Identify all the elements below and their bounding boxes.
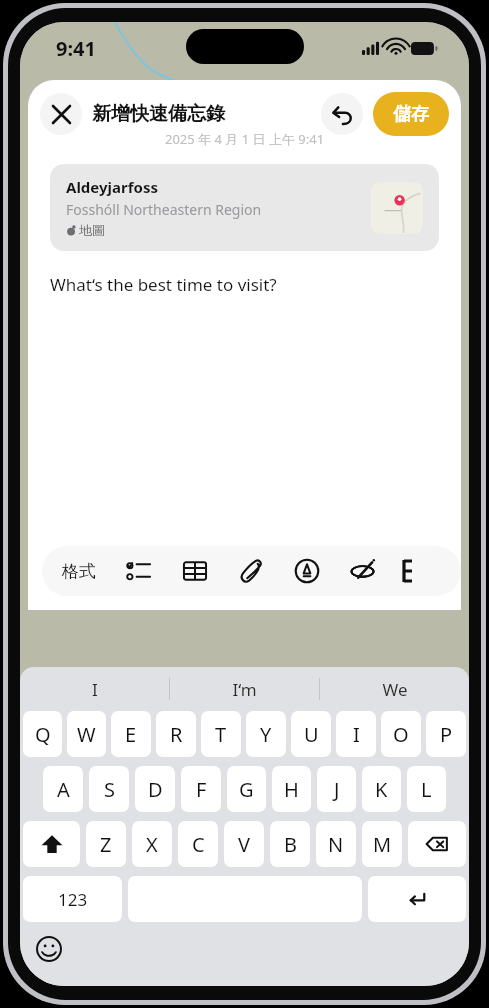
staticText: U bbox=[304, 721, 319, 748]
button[interactable]: 格式 bbox=[60, 561, 98, 582]
button[interactable]: Q bbox=[23, 711, 62, 757]
staticText: W bbox=[77, 721, 96, 748]
button[interactable]: P bbox=[426, 711, 466, 757]
button[interactable]: Z bbox=[86, 821, 126, 867]
button[interactable]: Bold bbox=[402, 560, 412, 582]
staticText: Aldeyjarfoss bbox=[66, 177, 158, 197]
button[interactable]: Aldeyjarfoss bbox=[50, 164, 439, 251]
staticText: F bbox=[196, 776, 207, 803]
staticText: G bbox=[239, 776, 254, 803]
button[interactable]: I bbox=[20, 667, 169, 711]
button[interactable]: N bbox=[316, 821, 356, 867]
staticText: H bbox=[284, 776, 299, 803]
staticText: A bbox=[57, 776, 70, 803]
staticText: 地圖 bbox=[79, 222, 105, 238]
staticText: P bbox=[440, 721, 453, 748]
button[interactable]: I bbox=[336, 711, 376, 757]
button[interactable]: V bbox=[224, 821, 264, 867]
staticText: X bbox=[146, 831, 158, 858]
button[interactable]: M bbox=[362, 821, 402, 867]
staticText: 123 bbox=[58, 888, 88, 911]
staticText: R bbox=[170, 721, 183, 748]
button[interactable]: Checklist bbox=[124, 556, 154, 586]
staticText: I‘m bbox=[232, 678, 257, 701]
staticText: Q bbox=[35, 721, 51, 748]
staticText: M bbox=[373, 831, 392, 858]
staticText: C bbox=[192, 831, 205, 858]
button[interactable]: Shift bbox=[23, 821, 80, 867]
button[interactable]: J bbox=[317, 766, 356, 812]
staticText: 格式 bbox=[62, 561, 96, 582]
button[interactable]: Backspace bbox=[408, 821, 466, 867]
button[interactable]: I‘m bbox=[170, 667, 319, 711]
button[interactable]: Intelligence bbox=[348, 556, 378, 586]
button[interactable]: Attach bbox=[236, 556, 266, 586]
staticText: L bbox=[421, 776, 432, 803]
staticText: J bbox=[334, 776, 340, 803]
staticText: I bbox=[92, 678, 98, 701]
button[interactable]: Emoji bbox=[32, 932, 66, 966]
staticText: V bbox=[238, 831, 250, 858]
button[interactable]: D bbox=[135, 766, 175, 812]
button[interactable]: E bbox=[111, 711, 151, 757]
button[interactable]: O bbox=[381, 711, 421, 757]
staticText: 新增快速備忘錄 bbox=[92, 102, 225, 126]
button[interactable]: S bbox=[89, 766, 129, 812]
button[interactable]: R bbox=[156, 711, 196, 757]
staticText: We bbox=[382, 678, 408, 701]
button[interactable]: Close bbox=[40, 93, 82, 135]
staticText: D bbox=[148, 776, 163, 803]
staticText: Z bbox=[100, 831, 112, 858]
button[interactable]: Y bbox=[246, 711, 286, 757]
button[interactable]: C bbox=[178, 821, 218, 867]
button[interactable]: We bbox=[320, 667, 469, 711]
staticText: What‘s the best time to visit? bbox=[50, 273, 277, 296]
staticText: N bbox=[328, 831, 344, 858]
button[interactable]: 123 bbox=[23, 876, 122, 922]
button[interactable]: Undo bbox=[321, 93, 363, 135]
button[interactable]: H bbox=[272, 766, 311, 812]
staticText: 儲存 bbox=[393, 103, 429, 126]
button[interactable]: L bbox=[407, 766, 446, 812]
staticText: O bbox=[393, 721, 409, 748]
staticText: 9:41 bbox=[56, 35, 96, 62]
staticText: S bbox=[104, 776, 115, 803]
button[interactable]: B bbox=[270, 821, 310, 867]
button[interactable]: X bbox=[132, 821, 172, 867]
staticText: K bbox=[375, 776, 388, 803]
button[interactable]: Table bbox=[180, 556, 210, 586]
staticText: T bbox=[215, 721, 227, 748]
staticText: E bbox=[125, 721, 137, 748]
staticText: Fosshóll Northeastern Region bbox=[66, 200, 262, 219]
button[interactable]: Markup bbox=[292, 556, 322, 586]
staticText: Y bbox=[260, 721, 272, 748]
button[interactable]: F bbox=[181, 766, 221, 812]
button[interactable]: K bbox=[362, 766, 401, 812]
button[interactable]: G bbox=[227, 766, 266, 812]
staticText: 2025 年 4 月 1 日 上午 9:41 bbox=[165, 130, 325, 148]
button[interactable]: Return bbox=[368, 876, 466, 922]
button[interactable]: T bbox=[201, 711, 241, 757]
button[interactable]: U bbox=[291, 711, 331, 757]
staticText: I bbox=[353, 721, 360, 748]
button[interactable]: W bbox=[67, 711, 106, 757]
button[interactable]: 儲存 bbox=[373, 92, 449, 136]
button[interactable]: A bbox=[43, 766, 83, 812]
staticText: B bbox=[284, 831, 297, 858]
